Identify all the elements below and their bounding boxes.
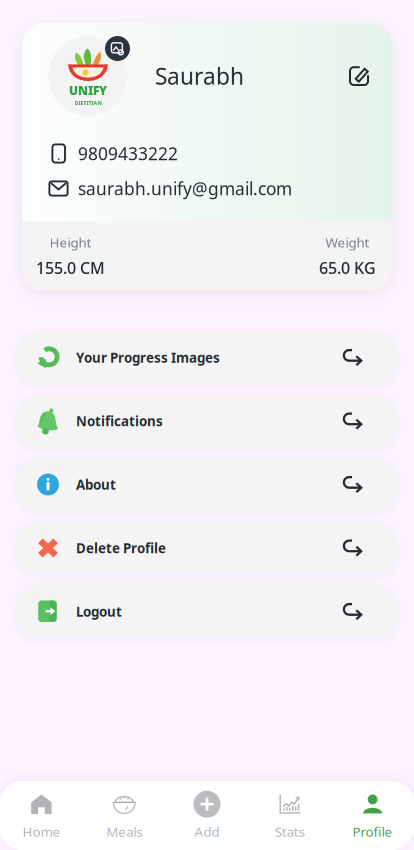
staticText: Profile (353, 823, 393, 840)
button[interactable]: Stats (248, 786, 331, 844)
button[interactable]: Your Progress Images (19, 332, 395, 383)
staticText: Your Progress Images (76, 349, 220, 366)
button[interactable]: Change photo (105, 36, 130, 61)
staticText: Height (49, 233, 91, 251)
staticText: About (76, 476, 116, 493)
staticText: Home (22, 823, 60, 840)
button[interactable]: Home (0, 786, 83, 844)
staticText: Add (194, 823, 219, 840)
staticText: Logout (76, 603, 122, 620)
staticText: 9809433222 (78, 142, 178, 165)
staticText: 65.0 KG (319, 257, 376, 278)
staticText: UNIFY (69, 82, 107, 98)
staticText: DIETITIAN (74, 99, 101, 106)
button[interactable]: Add (166, 786, 248, 844)
button[interactable]: Edit profile (345, 62, 373, 90)
staticText: Weight (325, 233, 369, 251)
button[interactable]: Profile (331, 786, 414, 844)
button[interactable]: Logout (19, 586, 395, 637)
staticText: saurabh.unify@gmail.com (78, 177, 292, 200)
staticText: 155.0 CM (36, 257, 105, 278)
button[interactable]: About (19, 459, 395, 510)
staticText: Meals (106, 823, 142, 840)
staticText: Saurabh (155, 61, 244, 91)
button[interactable]: Delete Profile (19, 522, 395, 573)
staticText: Notifications (76, 412, 163, 430)
staticText: Delete Profile (76, 539, 166, 557)
button[interactable]: Meals (83, 786, 166, 844)
staticText: Stats (275, 823, 305, 840)
button[interactable]: Notifications (19, 395, 395, 446)
